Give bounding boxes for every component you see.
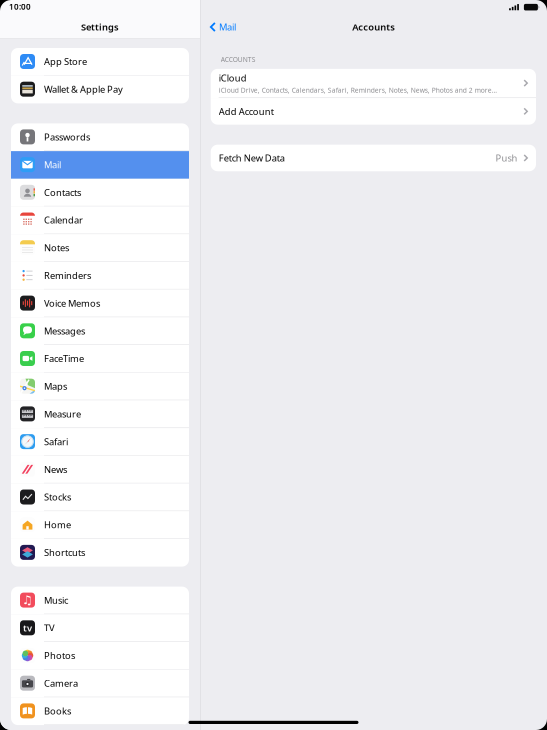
button[interactable]: iCloud (211, 69, 536, 98)
staticText: Shortcuts (44, 546, 85, 559)
staticText: tv (23, 622, 32, 634)
staticText: Push (495, 152, 517, 164)
staticText: TV (44, 622, 55, 634)
button[interactable]: Photos (11, 642, 189, 670)
staticText: iCloud Drive, Contacts, Calendars, Safar… (219, 86, 497, 94)
staticText: Settings (81, 21, 119, 33)
staticText: Calendar (44, 214, 83, 226)
staticText: App Store (44, 55, 87, 68)
staticText: Fetch New Data (219, 152, 285, 164)
staticText: Mail (44, 158, 61, 171)
staticText: FaceTime (44, 352, 84, 365)
button[interactable]: Wallet & Apple Pay (11, 76, 189, 103)
staticText: Home (44, 518, 71, 531)
button[interactable]: Mail (201, 17, 236, 37)
button[interactable]: FaceTime (11, 345, 189, 373)
staticText: Accounts (352, 21, 395, 33)
staticText: Safari (44, 435, 68, 448)
button[interactable]: Books (11, 697, 189, 725)
button[interactable]: Mail (11, 151, 189, 179)
button[interactable]: Safari (11, 428, 189, 456)
staticText: ♫ (22, 593, 33, 607)
button[interactable]: Measure (11, 400, 189, 428)
staticText: ACCOUNTS (221, 55, 256, 64)
button[interactable]: tv (11, 614, 189, 642)
button[interactable]: Stocks (11, 483, 189, 511)
staticText: News (44, 463, 67, 475)
staticText: Measure (44, 408, 81, 420)
button[interactable]: Messages (11, 317, 189, 345)
staticText: Wallet & Apple Pay (44, 83, 123, 95)
staticText: Voice Memos (44, 297, 100, 309)
staticText: Notes (44, 241, 69, 254)
staticText: Passwords (44, 131, 90, 143)
button[interactable]: News (11, 456, 189, 483)
button[interactable]: Passwords (11, 123, 189, 151)
button[interactable]: Voice Memos (11, 290, 189, 317)
staticText: iCloud (219, 72, 247, 84)
button[interactable]: Calendar (11, 206, 189, 234)
staticText: Mail (219, 21, 236, 33)
staticText: Camera (44, 677, 78, 689)
button[interactable]: Camera (11, 670, 189, 697)
staticText: Music (44, 594, 68, 606)
button[interactable]: Notes (11, 234, 189, 262)
button[interactable]: App Store (11, 48, 189, 76)
staticText: Books (44, 705, 71, 717)
staticText: Photos (44, 649, 75, 662)
button[interactable]: Home (11, 511, 189, 539)
staticText: 10:00 (9, 1, 31, 12)
staticText: Messages (44, 325, 85, 337)
button[interactable]: Add Account (211, 98, 536, 125)
button[interactable]: Contacts (11, 179, 189, 206)
staticText: Stocks (44, 491, 71, 503)
button[interactable]: Shortcuts (11, 539, 189, 567)
staticText: Add Account (219, 105, 274, 118)
button[interactable]: ♫ (11, 587, 189, 614)
staticText: Reminders (44, 269, 91, 282)
button[interactable]: Fetch New Data (211, 145, 536, 171)
staticText: Maps (44, 380, 67, 392)
button[interactable]: Maps (11, 373, 189, 400)
button[interactable]: Reminders (11, 262, 189, 290)
staticText: Contacts (44, 186, 81, 198)
